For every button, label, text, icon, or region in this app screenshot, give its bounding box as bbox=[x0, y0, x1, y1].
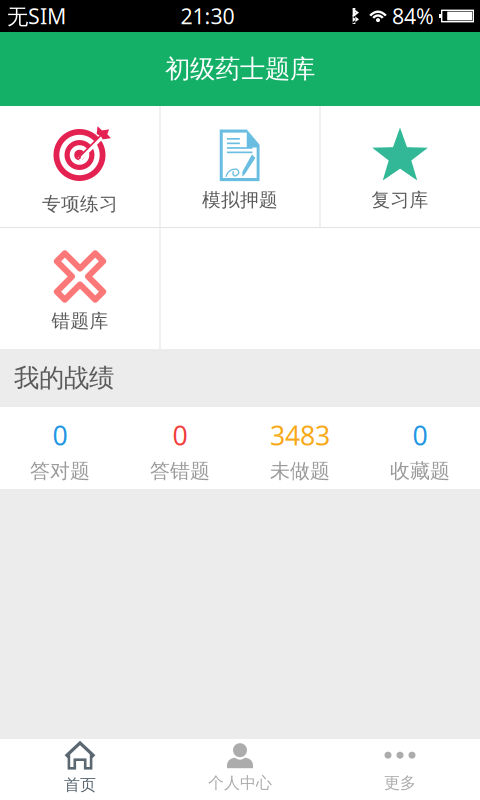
staticText: 未做题 bbox=[270, 459, 330, 483]
staticText: 0 bbox=[172, 417, 187, 453]
button[interactable]: 复习库 bbox=[320, 106, 480, 227]
button[interactable]: 错题库 bbox=[0, 227, 160, 348]
staticText: 0 bbox=[412, 417, 427, 453]
button[interactable]: 首页 bbox=[0, 739, 160, 800]
staticText: 专项练习 bbox=[42, 192, 118, 215]
button[interactable]: 专项练习 bbox=[0, 106, 160, 227]
button[interactable]: 更多 bbox=[320, 739, 480, 800]
staticText: 0 bbox=[52, 417, 67, 453]
staticText: 首页 bbox=[64, 775, 96, 795]
staticText: 21:30 bbox=[180, 2, 234, 30]
staticText: 答对题 bbox=[30, 459, 90, 483]
staticText: 更多 bbox=[384, 773, 416, 793]
staticText: 答错题 bbox=[150, 459, 210, 483]
staticText: 错题库 bbox=[51, 309, 108, 332]
staticText: 个人中心 bbox=[208, 773, 272, 793]
staticText: 模拟押题 bbox=[202, 188, 278, 211]
staticText: 我的战绩 bbox=[14, 362, 114, 393]
staticText: 复习库 bbox=[371, 188, 428, 211]
staticText: 收藏题 bbox=[390, 459, 450, 483]
staticText: 84% bbox=[392, 2, 434, 30]
staticText: 3483 bbox=[270, 417, 330, 453]
staticText: 初级药士题库 bbox=[165, 53, 315, 84]
staticText: 无SIM bbox=[7, 2, 66, 30]
button[interactable]: 模拟押题 bbox=[160, 106, 320, 227]
button[interactable]: 个人中心 bbox=[160, 739, 320, 800]
